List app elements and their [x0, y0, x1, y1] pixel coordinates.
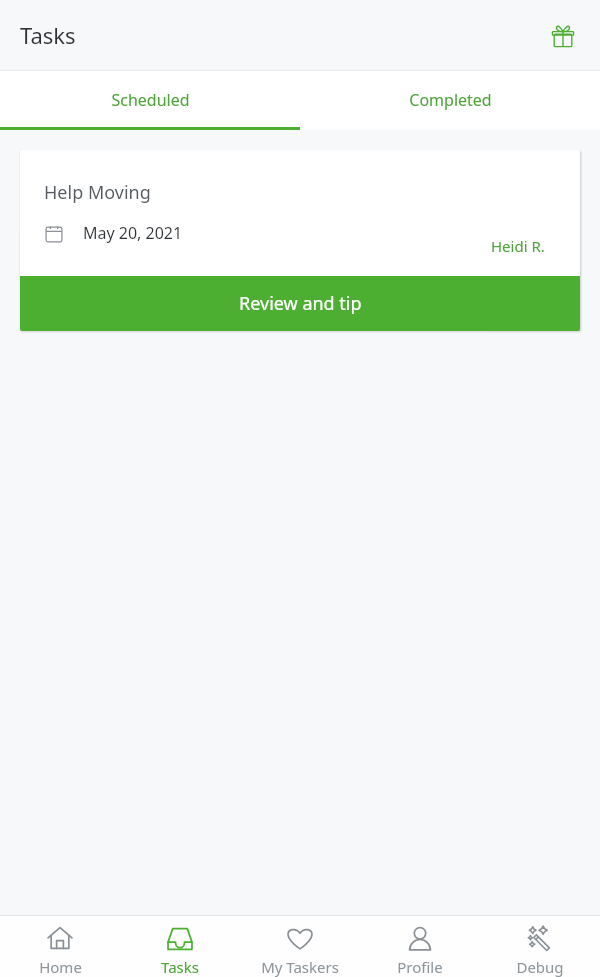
staticText: Tasks — [161, 957, 199, 977]
button[interactable]: My Taskers — [240, 917, 360, 977]
staticText: Home — [39, 957, 82, 977]
staticText: May 20, 2021 — [83, 222, 183, 244]
button[interactable]: Help Moving — [20, 150, 580, 331]
button[interactable]: Profile — [360, 917, 480, 977]
staticText: Heidi R. — [491, 236, 545, 256]
staticText: Profile — [397, 957, 443, 977]
staticText: My Taskers — [261, 957, 339, 977]
staticText: Completed — [409, 89, 492, 111]
button[interactable]: Debug — [480, 917, 600, 977]
button[interactable]: Completed — [300, 70, 600, 130]
staticText: Debug — [516, 957, 564, 977]
button[interactable]: Review and tip — [20, 276, 580, 331]
staticText: Review and tip — [239, 291, 362, 316]
staticText: Help Moving — [44, 180, 151, 205]
staticText: Tasks — [20, 20, 76, 50]
button[interactable]: Scheduled — [0, 70, 300, 130]
button[interactable]: Home — [0, 917, 120, 977]
button[interactable]: Gifts — [538, 11, 586, 59]
staticText: Scheduled — [111, 89, 190, 111]
button[interactable]: Tasks — [120, 917, 240, 977]
